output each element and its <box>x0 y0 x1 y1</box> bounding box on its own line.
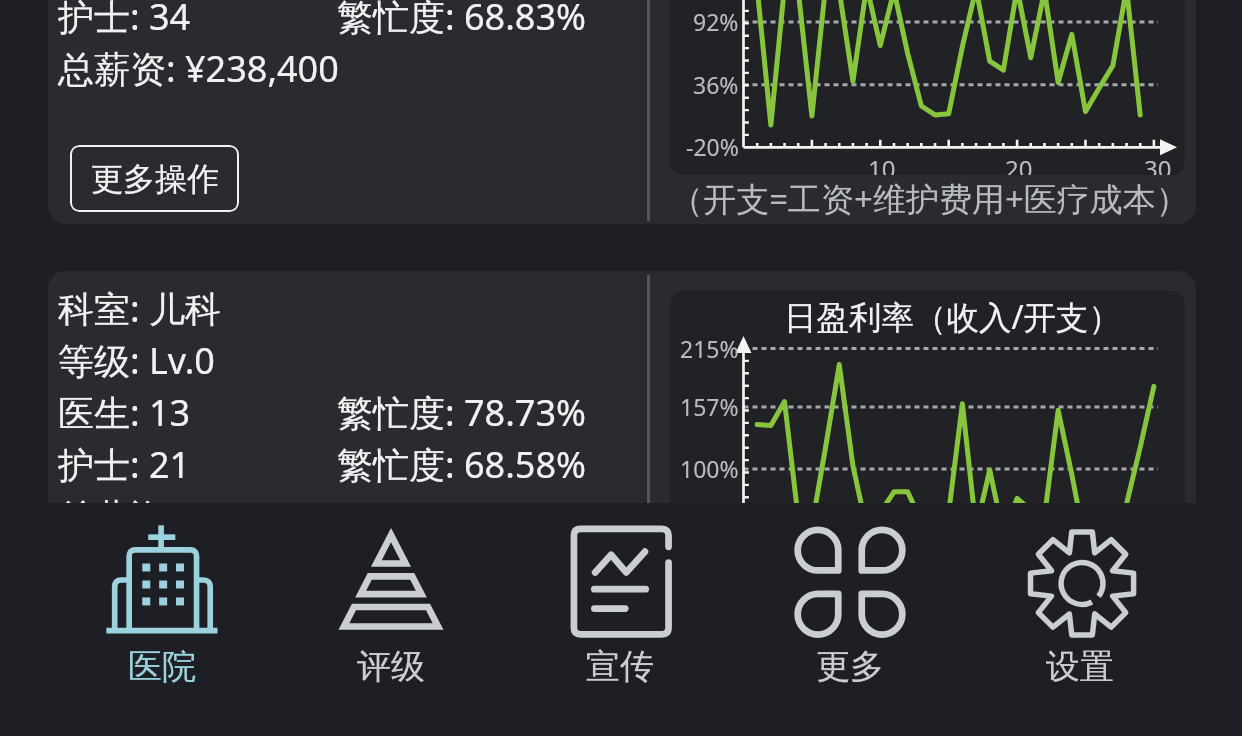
button[interactable]: 医院 <box>47 503 276 736</box>
staticText: 总薪资: ¥238,400 <box>58 44 339 93</box>
staticText: 10 <box>868 152 896 175</box>
staticText: 设置 <box>1046 645 1114 688</box>
button[interactable]: 更多 <box>735 503 965 736</box>
button[interactable]: 宣传 <box>505 503 735 736</box>
staticText: 繁忙度: 68.58% <box>337 440 586 489</box>
button[interactable]: 科室: 内科 <box>48 0 1196 224</box>
staticText: 医生: 13 <box>58 388 191 437</box>
button[interactable]: 评级 <box>276 503 505 736</box>
staticText: 100% <box>680 453 739 484</box>
staticText: 215% <box>680 333 739 364</box>
staticText: 宣传 <box>586 645 654 688</box>
staticText: 护士: 21 <box>58 440 191 489</box>
button[interactable]: 更多操作 <box>70 593 239 660</box>
staticText: 繁忙度: 68.83% <box>337 0 586 41</box>
staticText: 30 <box>1144 152 1172 175</box>
button[interactable]: 更多操作 <box>70 145 239 212</box>
staticText: 更多操作 <box>91 607 219 647</box>
staticText: 更多操作 <box>91 159 219 199</box>
staticText: 医院 <box>128 645 196 688</box>
staticText: 总薪资: ¥148,700 <box>58 492 339 541</box>
button[interactable]: 设置 <box>965 503 1195 736</box>
staticText: 157% <box>680 391 739 422</box>
staticText: 更多 <box>816 645 884 688</box>
staticText: 科室: 儿科 <box>58 284 222 333</box>
staticText: 等级: Lv.0 <box>58 336 215 385</box>
staticText: 92% <box>693 6 739 37</box>
staticText: -20% <box>686 131 739 162</box>
staticText: 日盈利率（收入/开支） <box>784 294 1122 338</box>
staticText: 36% <box>693 69 739 100</box>
staticText: 20 <box>1005 152 1033 175</box>
staticText: （开支=工资+维护费用+医疗成本） <box>670 176 1185 221</box>
staticText: 繁忙度: 78.73% <box>337 388 586 437</box>
staticText: 护士: 34 <box>58 0 191 41</box>
button[interactable]: 科室: 儿科 <box>48 271 1196 672</box>
staticText: 评级 <box>357 645 425 688</box>
